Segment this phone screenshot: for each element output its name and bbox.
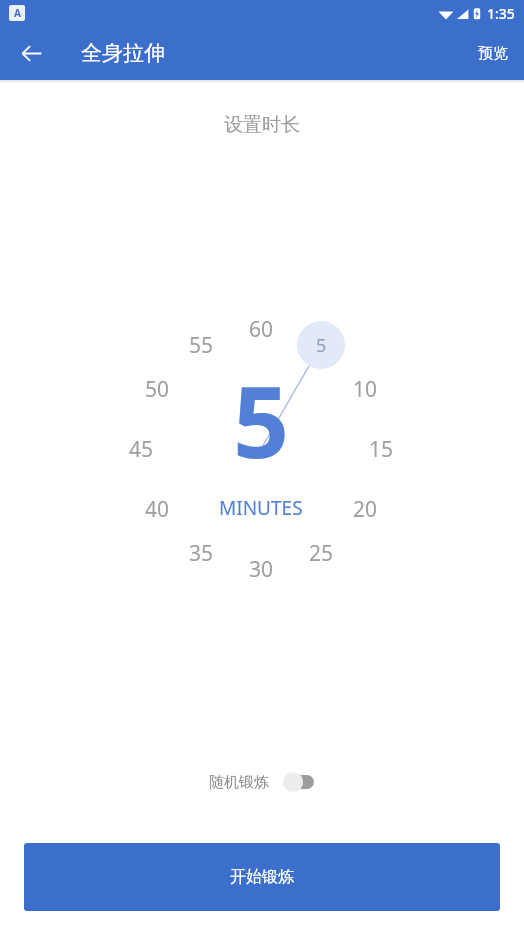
- staticText: 全身拉伸: [81, 40, 165, 66]
- staticText: 15: [369, 435, 394, 464]
- staticText: 50: [145, 375, 170, 404]
- staticText: 5: [316, 333, 327, 358]
- staticText: 45: [129, 435, 154, 464]
- staticText: A: [14, 6, 21, 20]
- staticText: MINUTES: [219, 495, 303, 521]
- staticText: 设置时长: [0, 113, 524, 137]
- button[interactable]: 随机锻炼: [205, 767, 320, 797]
- button[interactable]: 50: [131, 373, 183, 405]
- staticText: 预览: [478, 44, 508, 63]
- button[interactable]: 55: [175, 329, 227, 361]
- staticText: 30: [249, 555, 274, 584]
- button[interactable]: 10: [339, 373, 391, 405]
- button[interactable]: 25: [295, 537, 347, 569]
- button[interactable]: 15: [355, 433, 407, 465]
- staticText: 20: [353, 495, 378, 524]
- staticText: 55: [189, 331, 214, 360]
- button[interactable]: 35: [175, 537, 227, 569]
- staticText: 60: [249, 315, 274, 344]
- staticText: 5: [233, 353, 290, 463]
- button[interactable]: 45: [115, 433, 167, 465]
- staticText: 25: [309, 539, 334, 568]
- button[interactable]: 预览: [462, 33, 524, 74]
- button[interactable]: 60: [235, 313, 287, 345]
- button[interactable]: 20: [339, 493, 391, 525]
- button[interactable]: 开始锻炼: [24, 843, 500, 911]
- button[interactable]: 返回: [11, 33, 51, 73]
- button[interactable]: 40: [131, 493, 183, 525]
- staticText: 1:35: [487, 4, 515, 23]
- button[interactable]: 随机锻炼: [282, 771, 316, 793]
- staticText: 10: [353, 375, 378, 404]
- staticText: 35: [189, 539, 214, 568]
- staticText: 随机锻炼: [209, 773, 269, 792]
- staticText: 开始锻炼: [230, 867, 294, 887]
- button[interactable]: 5: [295, 329, 347, 361]
- staticText: 40: [145, 495, 170, 524]
- button[interactable]: 30: [235, 553, 287, 585]
